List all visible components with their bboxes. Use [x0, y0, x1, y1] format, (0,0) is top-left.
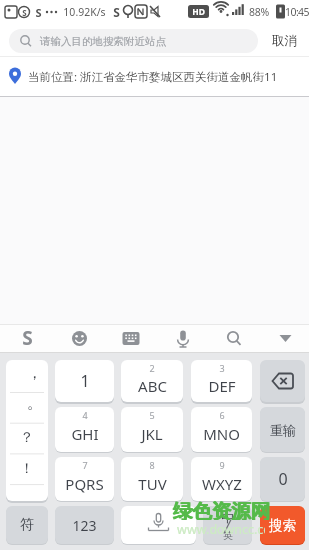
- staticText: 。: [27, 394, 42, 413]
- button[interactable]: [121, 506, 196, 544]
- button[interactable]: [121, 457, 183, 501]
- button[interactable]: [121, 360, 183, 402]
- staticText: TUV: [138, 474, 167, 494]
- button[interactable]: [220, 325, 248, 352]
- staticText: 10.92K/s: [63, 5, 106, 19]
- staticText: 搜索: [269, 517, 296, 534]
- staticText: DEF: [208, 376, 236, 396]
- staticText: 重输: [270, 422, 296, 438]
- staticText: 当前位置: 浙江省金华市婺城区西关街道金帆街11: [28, 69, 278, 85]
- button[interactable]: [260, 360, 305, 402]
- button[interactable]: [117, 325, 145, 352]
- staticText: 6: [219, 409, 225, 419]
- button[interactable]: [0, 57, 309, 96]
- button[interactable]: [191, 360, 252, 402]
- staticText: 2: [149, 362, 155, 372]
- staticText: 88%: [249, 5, 269, 19]
- staticText: ，: [27, 364, 42, 383]
- button[interactable]: [6, 506, 48, 544]
- button[interactable]: [260, 457, 305, 501]
- staticText: GHI: [71, 424, 99, 444]
- staticText: S: [22, 325, 33, 351]
- staticText: www.downcc.co: [177, 521, 265, 536]
- button[interactable]: [6, 360, 48, 501]
- staticText: 取消: [272, 33, 297, 49]
- button[interactable]: [14, 325, 42, 352]
- staticText: 英: [223, 529, 233, 542]
- button[interactable]: [55, 360, 114, 402]
- staticText: S: [113, 4, 120, 19]
- staticText: 123: [72, 516, 97, 535]
- button[interactable]: [55, 407, 114, 452]
- staticText: 8: [149, 459, 155, 469]
- button[interactable]: [191, 457, 252, 501]
- staticText: PQRS: [65, 474, 104, 494]
- staticText: ！: [20, 460, 34, 478]
- button[interactable]: [9, 29, 258, 53]
- staticText: HD: [192, 6, 205, 18]
- staticText: 5: [149, 409, 155, 419]
- staticText: 4: [82, 409, 88, 419]
- button[interactable]: [55, 457, 114, 501]
- button[interactable]: [260, 506, 305, 544]
- staticText: 1: [80, 370, 90, 392]
- staticText: 7: [82, 459, 88, 469]
- staticText: 10:45: [285, 5, 309, 19]
- button[interactable]: [66, 325, 94, 352]
- staticText: 请输入目的地搜索附近站点: [40, 35, 166, 48]
- staticText: ？: [20, 429, 34, 447]
- button[interactable]: [203, 506, 252, 544]
- staticText: 0: [278, 468, 288, 490]
- staticText: ABC: [138, 376, 167, 396]
- staticText: S: [35, 5, 42, 19]
- button[interactable]: [169, 325, 197, 352]
- staticText: 9: [219, 459, 225, 469]
- staticText: WXYZ: [202, 474, 242, 494]
- button[interactable]: [191, 407, 252, 452]
- staticText: JKL: [141, 424, 163, 444]
- button[interactable]: [260, 407, 305, 452]
- staticText: MNO: [203, 424, 240, 444]
- button[interactable]: 取消: [266, 29, 302, 53]
- staticText: 绿色资源网: [173, 499, 271, 520]
- staticText: 绿色资源网: [172, 499, 270, 520]
- staticText: 中: [221, 509, 234, 525]
- staticText: 3: [219, 362, 225, 372]
- button[interactable]: [272, 325, 300, 352]
- staticText: S: [22, 7, 27, 18]
- staticText: 符: [20, 516, 34, 534]
- button[interactable]: [121, 407, 183, 452]
- button[interactable]: [55, 506, 114, 544]
